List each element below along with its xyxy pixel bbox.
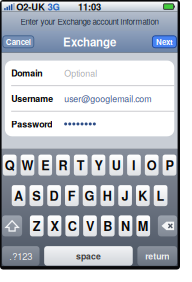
staticText: N bbox=[121, 217, 130, 235]
button[interactable]: return bbox=[137, 246, 177, 266]
staticText: E bbox=[41, 156, 49, 174]
button[interactable]: J bbox=[118, 185, 132, 206]
button[interactable]: .?123 bbox=[2, 246, 39, 266]
staticText: V bbox=[86, 217, 94, 235]
button[interactable]: A bbox=[12, 185, 25, 206]
staticText: space bbox=[76, 250, 101, 262]
button[interactable]: B bbox=[101, 215, 115, 236]
staticText: Next bbox=[156, 36, 173, 48]
staticText: U bbox=[112, 156, 121, 174]
button[interactable]: Z bbox=[30, 215, 44, 236]
button[interactable]: Shift bbox=[2, 215, 22, 236]
staticText: W bbox=[21, 156, 33, 174]
staticText: D bbox=[50, 186, 59, 205]
staticText: J bbox=[122, 186, 129, 205]
button[interactable]: M bbox=[136, 215, 150, 236]
button[interactable]: C bbox=[65, 215, 79, 236]
staticText: Password bbox=[11, 118, 52, 130]
button[interactable]: K bbox=[136, 185, 150, 206]
button[interactable]: L bbox=[154, 185, 167, 206]
button[interactable]: Cancel bbox=[3, 36, 34, 48]
button[interactable]: H bbox=[100, 185, 114, 206]
button[interactable]: N bbox=[119, 215, 132, 236]
button[interactable]: O bbox=[145, 155, 159, 176]
staticText: H bbox=[103, 186, 112, 205]
button[interactable]: F bbox=[65, 185, 79, 206]
button[interactable]: I bbox=[127, 155, 141, 176]
button[interactable]: R bbox=[56, 155, 70, 176]
staticText: A bbox=[14, 186, 23, 205]
button[interactable]: W bbox=[21, 155, 34, 176]
staticText: K bbox=[138, 186, 147, 205]
staticText: 11:03 bbox=[78, 0, 101, 13]
button[interactable]: D bbox=[47, 185, 61, 206]
button[interactable]: space bbox=[44, 246, 133, 266]
staticText: Domain bbox=[11, 67, 42, 79]
staticText: C bbox=[68, 217, 77, 235]
staticText: Optional bbox=[64, 67, 97, 79]
staticText: R bbox=[58, 156, 67, 174]
staticText: B bbox=[103, 217, 112, 235]
button[interactable]: V bbox=[83, 215, 97, 236]
staticText: P bbox=[165, 156, 173, 174]
staticText: S bbox=[32, 186, 40, 205]
button[interactable]: Y bbox=[92, 155, 105, 176]
staticText: Y bbox=[94, 156, 102, 174]
staticText: L bbox=[157, 186, 165, 205]
staticText: T bbox=[77, 156, 85, 174]
button[interactable]: U bbox=[109, 155, 123, 176]
staticText: Username bbox=[11, 92, 53, 105]
staticText: M bbox=[138, 217, 149, 235]
staticText: Z bbox=[33, 217, 41, 235]
staticText: Exchange bbox=[63, 34, 116, 50]
staticText: I bbox=[132, 156, 136, 174]
button[interactable]: P bbox=[163, 155, 176, 176]
button[interactable]: E bbox=[38, 155, 52, 176]
staticText: Q bbox=[5, 156, 15, 174]
button[interactable]: X bbox=[48, 215, 61, 236]
staticText: return bbox=[145, 250, 169, 262]
button[interactable]: Delete bbox=[158, 215, 177, 236]
button[interactable]: Q bbox=[3, 155, 17, 176]
staticText: X bbox=[50, 217, 58, 235]
staticText: G bbox=[85, 186, 95, 205]
staticText: O2-UK bbox=[16, 0, 45, 13]
staticText: F bbox=[68, 186, 76, 205]
staticText: Cancel bbox=[6, 36, 31, 48]
button[interactable]: Next bbox=[152, 36, 176, 48]
staticText: .?123 bbox=[9, 249, 32, 263]
button[interactable]: S bbox=[29, 185, 43, 206]
staticText: 3G bbox=[47, 0, 59, 13]
button[interactable]: G bbox=[83, 185, 96, 206]
staticText: Enter your Exchange account information bbox=[21, 16, 159, 27]
button[interactable]: T bbox=[74, 155, 88, 176]
staticText: user@googlemail.com bbox=[64, 92, 151, 105]
staticText: O bbox=[147, 156, 157, 174]
